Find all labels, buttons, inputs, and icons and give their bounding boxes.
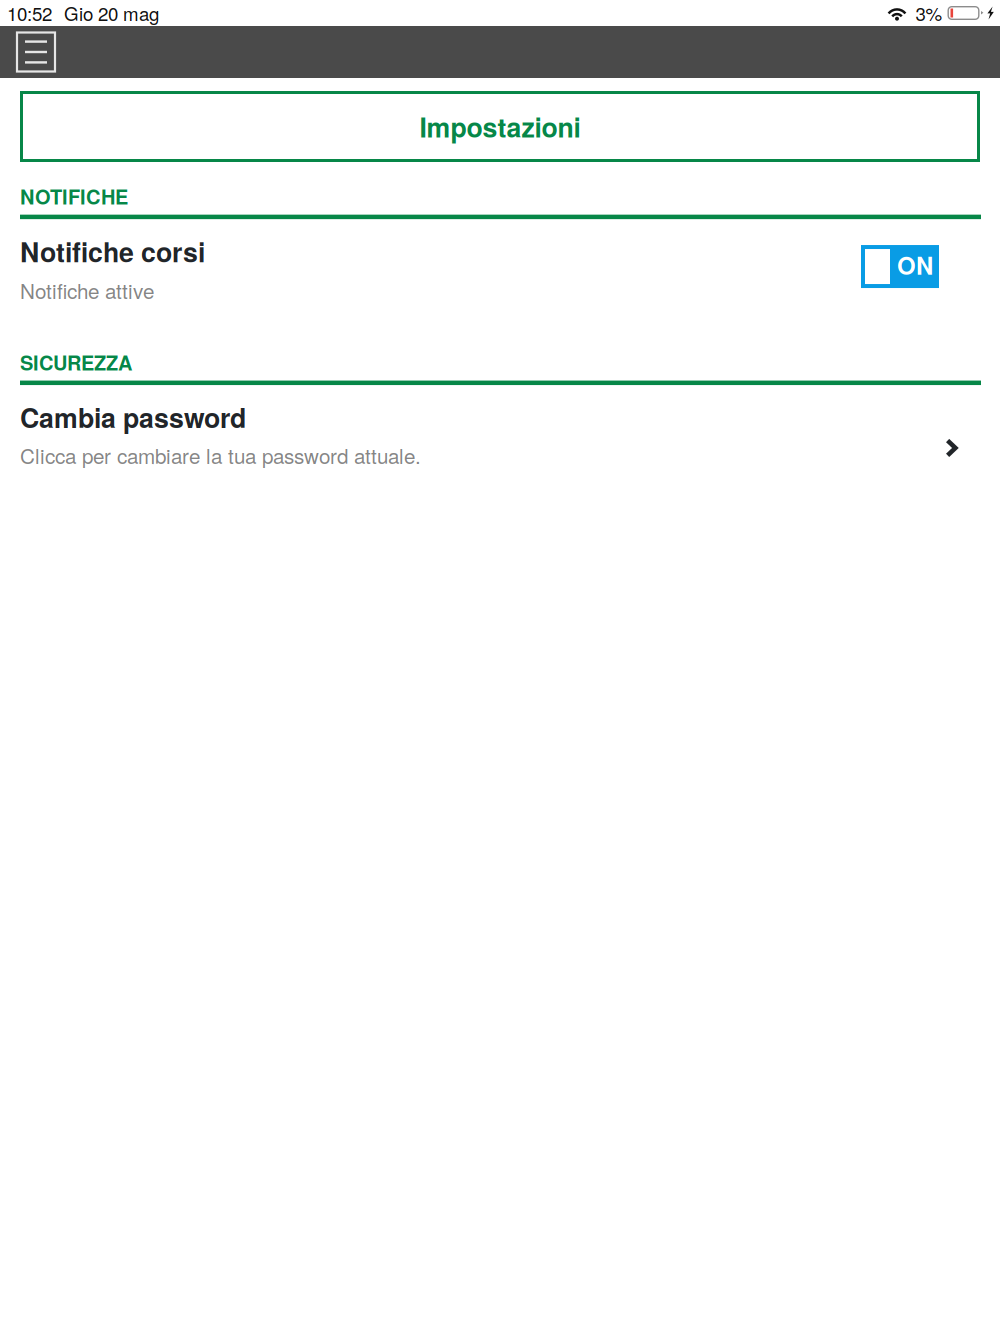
staticText: 3% [915, 0, 942, 26]
staticText: 10:52 [7, 0, 52, 26]
button[interactable]: Notifiche corsi [861, 245, 939, 292]
staticText: ON [897, 248, 933, 282]
staticText: SICUREZZA [20, 348, 132, 376]
staticText: Impostazioni [419, 107, 580, 146]
staticText: NOTIFICHE [20, 182, 128, 211]
staticText: Notifiche corsi [20, 232, 205, 270]
button[interactable]: Impostazioni [20, 91, 980, 162]
staticText: Clicca per cambiare la tua password attu… [20, 440, 421, 470]
staticText: Cambia password [20, 398, 246, 436]
button[interactable]: Menu [17, 32, 55, 71]
staticText: Notifiche attive [20, 275, 154, 305]
staticText: Gio 20 mag [64, 0, 159, 26]
button[interactable]: Cambia password [0, 385, 1000, 470]
